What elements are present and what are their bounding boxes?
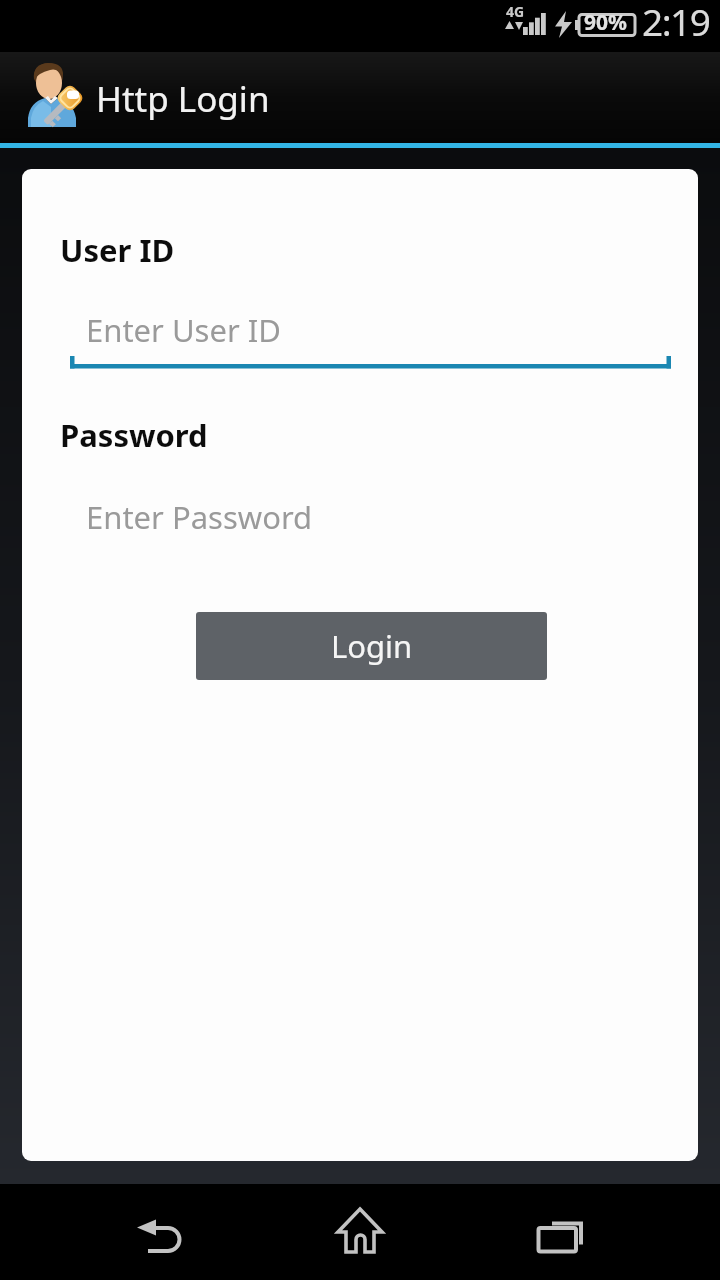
button[interactable]: Enter Password — [66, 486, 671, 558]
button[interactable]: Enter User ID — [66, 299, 675, 373]
staticText: User ID — [60, 229, 175, 271]
staticText: 4G — [506, 2, 525, 21]
button[interactable] — [460, 1184, 660, 1280]
button[interactable] — [60, 1184, 260, 1280]
staticText: Http Login — [96, 75, 270, 123]
button[interactable] — [260, 1184, 460, 1280]
staticText: Login — [331, 625, 413, 667]
staticText: 2:19 — [642, 0, 710, 46]
staticText: Enter User ID — [86, 309, 281, 351]
button[interactable]: Login — [196, 612, 547, 680]
staticText: 90% — [584, 8, 627, 37]
staticText: Password — [60, 414, 208, 456]
staticText: Enter Password — [86, 496, 313, 538]
